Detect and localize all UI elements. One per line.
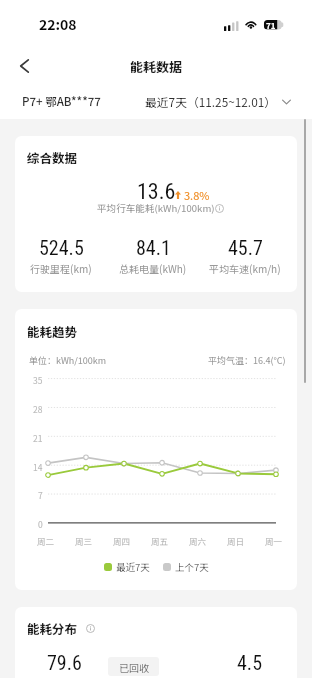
staticText: 平均车速(km/h) <box>209 261 281 275</box>
staticText: 能耗分布 <box>27 619 78 637</box>
staticText: 4.5 <box>237 651 263 674</box>
staticText: 7 <box>38 489 43 501</box>
button[interactable]: Back <box>8 49 41 82</box>
staticText: 35 <box>33 374 43 386</box>
staticText: 84.1 <box>136 236 171 259</box>
button[interactable]: 最近7天（11.25~12.01） <box>145 93 291 110</box>
staticText: 能耗数据 <box>130 57 183 76</box>
staticText: 周六 <box>189 535 207 547</box>
staticText: 最近7天（11.25~12.01） <box>145 93 277 110</box>
staticText: 周一 <box>265 535 283 547</box>
staticText: 79.6 <box>47 651 82 674</box>
staticText: 45.7 <box>228 236 263 259</box>
staticText: 28 <box>33 403 43 415</box>
staticText: 周四 <box>113 535 131 547</box>
staticText: 平均行车能耗(kWh/100km) <box>97 201 215 215</box>
staticText: 上个7天 <box>175 560 209 574</box>
staticText: 行驶里程(km) <box>30 261 92 275</box>
staticText: 524.5 <box>39 236 84 259</box>
staticText: 总耗电量(kWh) <box>119 261 187 275</box>
staticText: 最近7天 <box>116 560 150 574</box>
staticText: 能耗趋势 <box>27 322 78 340</box>
staticText: 21 <box>33 432 43 444</box>
staticText: 13.6 <box>137 179 176 205</box>
staticText: 3.8% <box>184 187 210 203</box>
staticText: 周五 <box>151 535 169 547</box>
staticText: 71 <box>266 20 276 31</box>
staticText: 单位：kWh/100km <box>29 354 107 367</box>
staticText: 平均气温：16.4(°C) <box>208 354 286 367</box>
staticText: 14 <box>33 461 43 473</box>
staticText: P7+ 鄂AB***77 <box>22 93 101 110</box>
staticText: 周日 <box>227 535 245 547</box>
staticText: 0 <box>38 518 43 530</box>
staticText: 已回收 <box>119 660 149 674</box>
button[interactable]: 已回收 <box>108 657 159 676</box>
staticText: 22:08 <box>39 14 77 34</box>
staticText: 综合数据 <box>27 148 78 166</box>
staticText: 周二 <box>37 535 55 547</box>
staticText: 周三 <box>75 535 93 547</box>
